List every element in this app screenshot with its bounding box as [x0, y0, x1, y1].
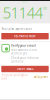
staticText: Check your inbox to continue. [11, 56, 39, 63]
staticText: Your plan expires soon [1, 27, 32, 31]
staticText: Available balance [19, 23, 31, 25]
staticText: VERIFY EMAIL [16, 67, 33, 71]
staticText: Upgrade [36, 75, 48, 79]
staticText: Verify your email [11, 44, 36, 47]
staticText: Your account is not verified yet. [11, 48, 37, 55]
button[interactable]: VERIFY EMAIL [1, 66, 49, 72]
staticText: 00 [43, 7, 47, 10]
button[interactable]: Upgrade [34, 75, 48, 79]
button[interactable]: Resend verification link [2, 73, 29, 80]
staticText: 51144 [3, 3, 43, 22]
button[interactable]: RECHARGE NOW [1, 33, 49, 39]
staticText: Balance [22, 1, 28, 3]
staticText: Resend verification link [2, 73, 29, 80]
staticText: RECHARGE NOW [14, 34, 36, 38]
